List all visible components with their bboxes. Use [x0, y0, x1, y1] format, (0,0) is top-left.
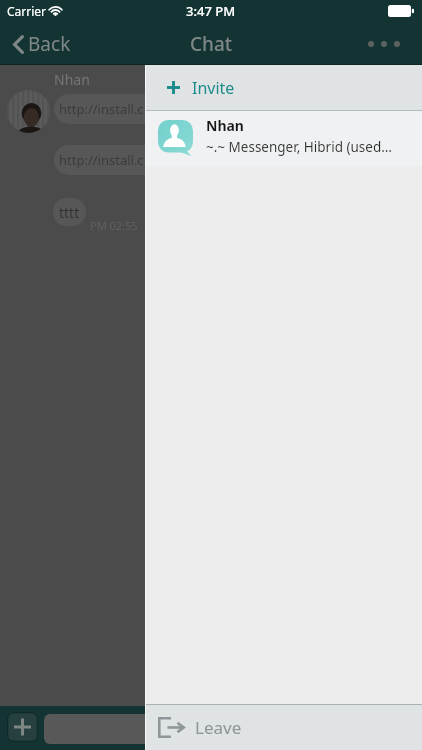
staticText: http://install.c: [59, 151, 144, 169]
staticText: Leave: [195, 716, 242, 739]
button[interactable]: Nhan: [146, 111, 422, 166]
staticText: Nhan: [206, 116, 244, 135]
button[interactable]: Back: [0, 26, 81, 62]
staticText: ~.~ Messenger, Hibrid (used…: [206, 138, 392, 156]
button[interactable]: Invite: [146, 65, 422, 110]
staticText: Nhan: [54, 70, 90, 89]
button[interactable]: Leave: [146, 705, 422, 750]
staticText: Back: [28, 31, 71, 57]
button[interactable]: Add attachment: [7, 712, 38, 742]
staticText: 3:47 PM: [186, 2, 236, 20]
button[interactable]: More options: [354, 29, 422, 59]
staticText: Invite: [192, 77, 235, 99]
staticText: tttt: [59, 203, 80, 222]
staticText: Carrier: [7, 3, 47, 19]
staticText: Chat: [190, 31, 233, 57]
staticText: http://install.c: [59, 100, 144, 118]
staticText: PM 02:55: [90, 218, 138, 233]
